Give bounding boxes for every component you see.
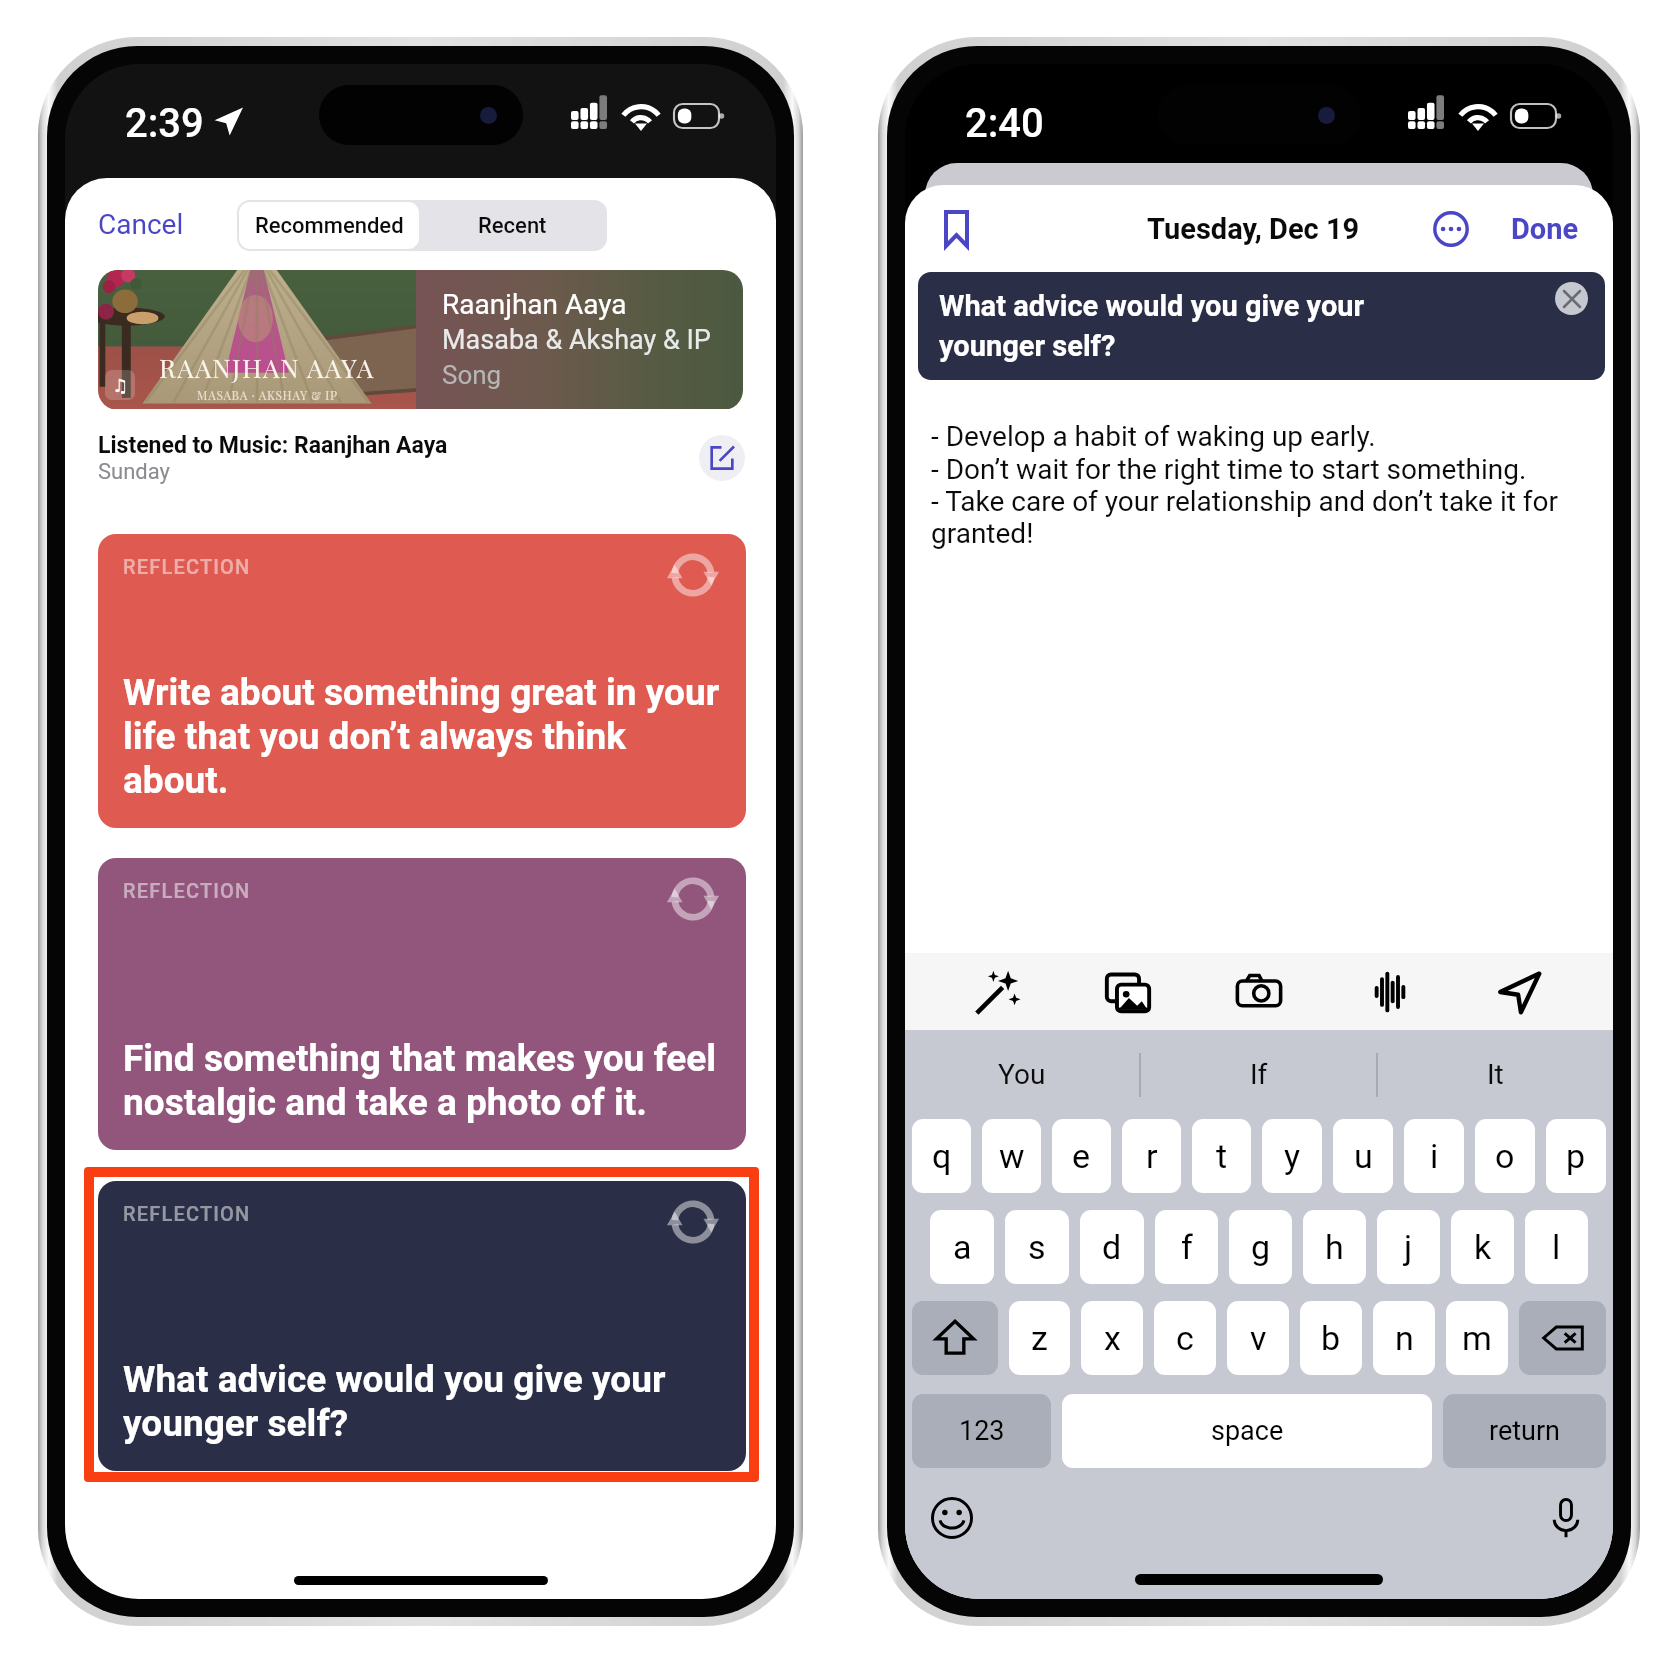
button[interactable]: Edit entry: [699, 435, 745, 481]
staticText: x: [1104, 1318, 1121, 1358]
button[interactable]: s: [1005, 1210, 1069, 1284]
button[interactable]: v: [1227, 1301, 1289, 1375]
staticText: Recommended: [255, 213, 404, 239]
button[interactable]: Bookmark: [927, 200, 985, 258]
staticText: - Develop a habit of waking up early. - …: [931, 420, 1597, 550]
button[interactable]: k: [1451, 1210, 1514, 1284]
button[interactable]: 123: [912, 1394, 1051, 1468]
staticText: a: [953, 1227, 972, 1267]
button[interactable]: space: [1062, 1394, 1432, 1468]
staticText: Sunday: [98, 459, 170, 485]
button[interactable]: REFLECTION: [98, 534, 746, 828]
button[interactable]: i: [1404, 1119, 1464, 1193]
button[interactable]: If: [1141, 1030, 1376, 1119]
button[interactable]: m: [1446, 1301, 1508, 1375]
button[interactable]: p: [1546, 1119, 1606, 1193]
button[interactable]: g: [1229, 1210, 1292, 1284]
staticText: Recent: [478, 213, 547, 239]
staticText: c: [1176, 1318, 1194, 1358]
staticText: Masaba & Akshay & IP: [442, 324, 711, 356]
button[interactable]: u: [1333, 1119, 1393, 1193]
staticText: Song: [442, 360, 502, 390]
staticText: Listened to Music: Raanjhan Aaya: [98, 432, 448, 459]
button[interactable]: q: [912, 1119, 971, 1193]
staticText: h: [1325, 1227, 1344, 1267]
button[interactable]: Location: [1482, 954, 1558, 1030]
staticText: u: [1354, 1136, 1373, 1176]
button[interactable]: b: [1300, 1301, 1362, 1375]
button[interactable]: REFLECTION: [98, 1181, 746, 1471]
button[interactable]: x: [1081, 1301, 1143, 1375]
button[interactable]: RAANJHAN AAYA: [98, 270, 743, 410]
button[interactable]: Shift: [912, 1301, 998, 1375]
staticText: return: [1489, 1415, 1560, 1447]
button[interactable]: Effects: [960, 954, 1036, 1030]
staticText: MASABA · AKSHAY & IP: [197, 387, 338, 403]
button[interactable]: New prompt: [664, 1193, 722, 1251]
staticText: m: [1462, 1318, 1492, 1358]
staticText: 2:39: [125, 100, 204, 147]
button[interactable]: What advice would you give your younger …: [918, 272, 1605, 380]
button[interactable]: c: [1154, 1301, 1216, 1375]
staticText: ♫: [112, 375, 129, 396]
button[interactable]: You: [905, 1030, 1139, 1119]
staticText: It: [1487, 1058, 1504, 1091]
button[interactable]: Recent: [419, 202, 605, 249]
button[interactable]: r: [1122, 1119, 1181, 1193]
staticText: You: [998, 1058, 1046, 1091]
button[interactable]: Recommended: [239, 202, 419, 249]
staticText: REFLECTION: [123, 879, 251, 902]
staticText: b: [1321, 1318, 1341, 1358]
staticText: i: [1430, 1136, 1439, 1176]
button[interactable]: Cancel: [90, 202, 192, 247]
button[interactable]: New prompt: [664, 870, 722, 928]
staticText: j: [1404, 1227, 1413, 1267]
button[interactable]: y: [1262, 1119, 1322, 1193]
staticText: t: [1216, 1136, 1228, 1176]
button[interactable]: n: [1373, 1301, 1435, 1375]
staticText: e: [1072, 1136, 1091, 1176]
button[interactable]: w: [982, 1119, 1041, 1193]
staticText: z: [1031, 1318, 1048, 1358]
staticText: g: [1251, 1227, 1271, 1267]
button[interactable]: t: [1192, 1119, 1251, 1193]
button[interactable]: z: [1009, 1301, 1070, 1375]
staticText: REFLECTION: [123, 1202, 251, 1225]
staticText: What advice would you give your younger …: [123, 1358, 720, 1445]
button[interactable]: h: [1303, 1210, 1366, 1284]
staticText: y: [1284, 1136, 1301, 1176]
button[interactable]: REFLECTION: [98, 858, 746, 1150]
button[interactable]: Emoji: [923, 1489, 981, 1547]
staticText: RAANJHAN AAYA: [159, 350, 375, 385]
button[interactable]: Audio: [1352, 954, 1428, 1030]
staticText: f: [1181, 1227, 1193, 1267]
button[interactable]: Done: [1505, 206, 1585, 252]
staticText: v: [1250, 1318, 1267, 1358]
button[interactable]: Dictation: [1537, 1489, 1595, 1547]
button[interactable]: o: [1475, 1119, 1535, 1193]
staticText: Cancel: [98, 208, 184, 241]
button[interactable]: Dismiss prompt: [1555, 282, 1588, 315]
staticText: What advice would you give your younger …: [939, 289, 1365, 363]
staticText: Tuesday, Dec 19: [1147, 212, 1360, 246]
staticText: o: [1495, 1136, 1515, 1176]
button[interactable]: New prompt: [664, 546, 722, 604]
button[interactable]: Camera: [1221, 954, 1297, 1030]
staticText: d: [1102, 1227, 1122, 1267]
button[interactable]: Photos: [1090, 954, 1166, 1030]
button[interactable]: e: [1052, 1119, 1111, 1193]
button[interactable]: f: [1155, 1210, 1218, 1284]
button[interactable]: Backspace: [1519, 1301, 1606, 1375]
staticText: Find something that makes you feel nosta…: [123, 1037, 720, 1124]
button[interactable]: l: [1525, 1210, 1588, 1284]
button[interactable]: j: [1377, 1210, 1440, 1284]
button[interactable]: d: [1080, 1210, 1144, 1284]
button[interactable]: More options: [1427, 205, 1475, 253]
button[interactable]: return: [1443, 1394, 1606, 1468]
button[interactable]: a: [930, 1210, 994, 1284]
staticText: s: [1028, 1227, 1046, 1267]
staticText: Raanjhan Aaya: [442, 288, 627, 321]
staticText: Write about something great in your life…: [123, 671, 720, 802]
button[interactable]: It: [1378, 1030, 1613, 1119]
staticText: p: [1566, 1136, 1586, 1176]
